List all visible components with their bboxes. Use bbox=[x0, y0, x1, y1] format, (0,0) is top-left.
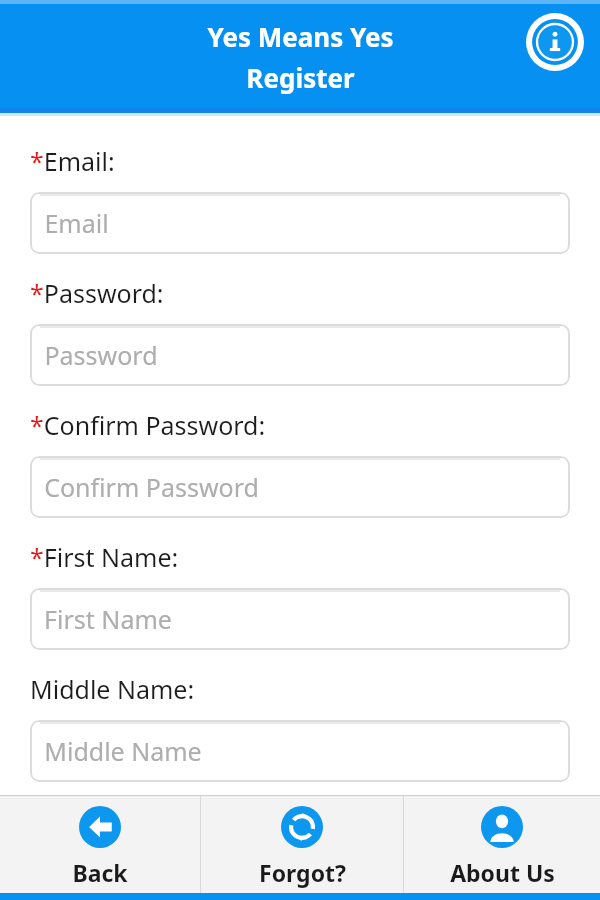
other: Forgot password bbox=[281, 806, 323, 848]
staticText: Email bbox=[44, 206, 109, 240]
button[interactable]: Password bbox=[30, 324, 570, 386]
button[interactable]: Back bbox=[0, 796, 200, 893]
staticText: Confirm Password bbox=[44, 470, 259, 504]
button[interactable]: About Us bbox=[404, 796, 600, 893]
button[interactable]: Email bbox=[30, 192, 570, 254]
button[interactable]: Confirm Password bbox=[30, 456, 570, 518]
button[interactable]: Forgot password bbox=[201, 796, 403, 893]
staticText: Forgot? bbox=[259, 857, 346, 888]
staticText: Middle Name: bbox=[30, 672, 195, 706]
staticText: *Email: bbox=[30, 144, 115, 178]
staticText: About Us bbox=[450, 857, 555, 888]
button[interactable]: Information bbox=[524, 11, 586, 73]
staticText: *First Name: bbox=[30, 540, 179, 574]
staticText: Back bbox=[72, 857, 128, 888]
button[interactable]: First Name bbox=[30, 588, 570, 650]
staticText: *Confirm Password: bbox=[30, 408, 266, 442]
staticText: Register bbox=[246, 60, 355, 95]
button[interactable]: Middle Name bbox=[30, 720, 570, 782]
staticText: Middle Name bbox=[44, 734, 202, 768]
staticText: *Password: bbox=[30, 276, 164, 310]
other: Back bbox=[79, 806, 121, 848]
staticText: First Name bbox=[44, 602, 172, 636]
staticText: Yes Means Yes bbox=[207, 19, 394, 54]
other: About Us bbox=[481, 806, 523, 848]
staticText: Password bbox=[44, 338, 158, 372]
